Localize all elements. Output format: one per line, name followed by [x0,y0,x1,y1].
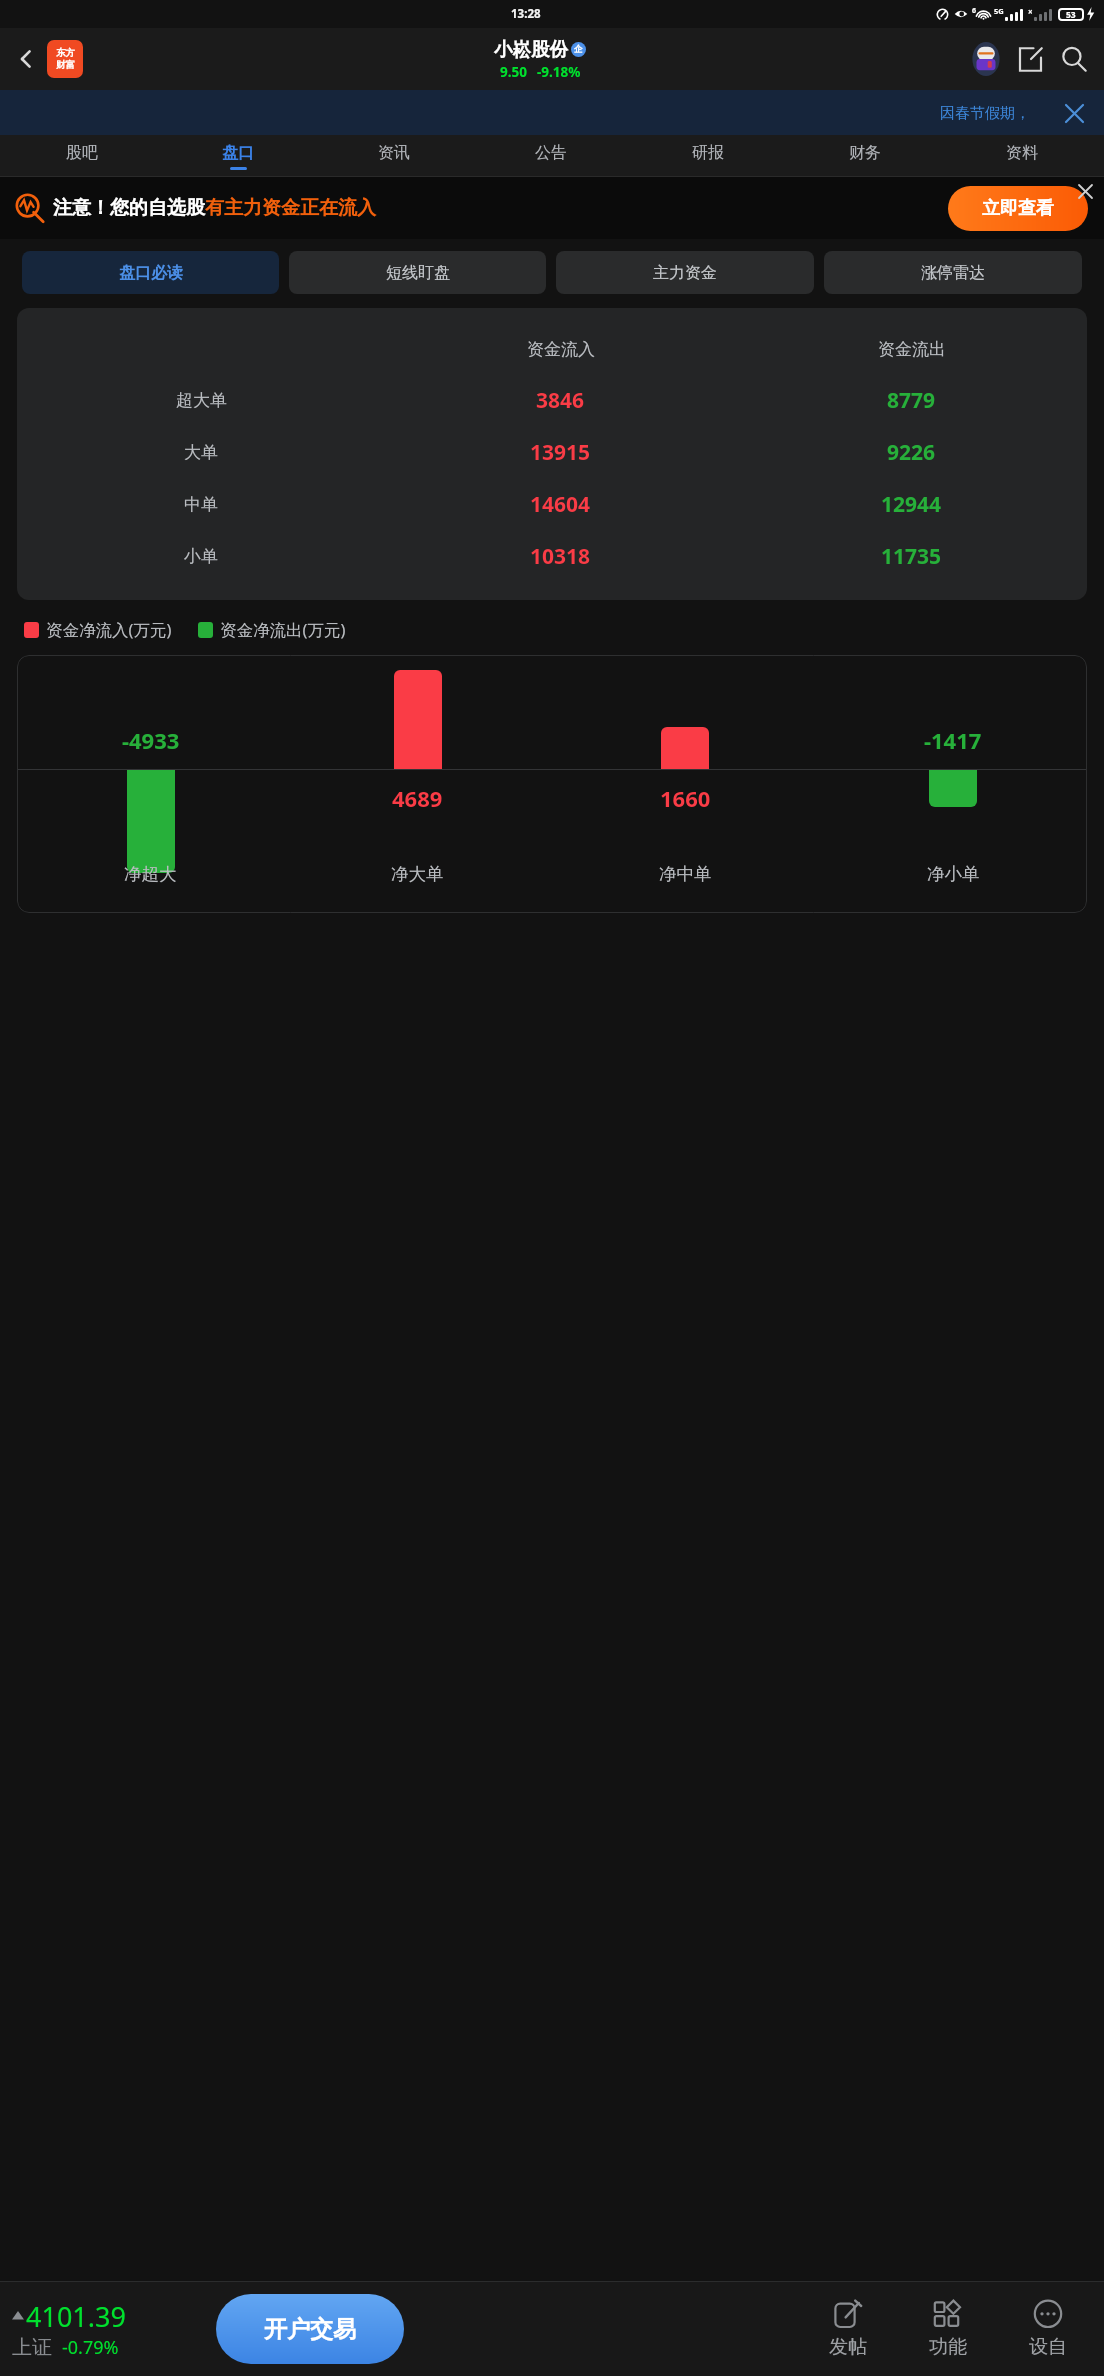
button[interactable]: 4101.39 [12,2298,212,2360]
staticText: 净超大 [124,863,177,885]
staticText: 企 [574,44,583,55]
staticText: 立即查看 [982,197,1054,220]
staticText: 1660 [660,783,711,813]
button[interactable]: 功能 [898,2282,998,2376]
staticText: 盘口 [222,143,254,163]
staticText: 小单 [184,546,218,567]
staticText: 短线盯盘 [386,263,450,283]
staticText: 12944 [881,490,942,519]
button[interactable]: Close [1060,99,1088,127]
staticText: -1417 [924,725,982,755]
button[interactable]: Assistant [964,37,1008,81]
staticText: 9226 [887,438,936,467]
staticText: 大单 [184,442,218,463]
button[interactable]: 立即查看 [948,186,1088,231]
button[interactable]: 设自 [998,2282,1098,2376]
staticText: 盘口必读 [119,263,183,283]
staticText: 资金流入 [527,339,595,360]
staticText: 主力资金 [653,263,717,283]
button[interactable]: 研报 [629,135,786,177]
button[interactable]: 开户交易 [216,2294,404,2364]
staticText: 10318 [530,542,591,571]
staticText: 资金流出 [878,339,946,360]
staticText: 3846 [536,386,585,415]
staticText: -0.79% [62,2335,119,2360]
staticText: 11735 [881,542,942,571]
staticText: 4689 [392,783,443,813]
staticText: 公告 [535,143,567,163]
button[interactable]: -4933 [17,655,1087,913]
button[interactable]: Search [1052,37,1096,81]
staticText: -9.18% [537,63,581,81]
staticText: 上证 [12,2335,52,2360]
button[interactable]: 公告 [472,135,629,177]
staticText: 资料 [1006,143,1038,163]
staticText: 14604 [530,490,591,519]
staticText: 功能 [929,2335,967,2359]
staticText: 中单 [184,494,218,515]
staticText: 13915 [530,438,591,467]
staticText: 53 [1066,9,1076,21]
staticText: 东方 [56,47,75,59]
button[interactable]: 股吧 [4,135,160,177]
staticText: 开户交易 [264,2315,356,2344]
staticText: 6 [972,6,977,16]
button[interactable]: 东方财富 [47,40,83,78]
button[interactable]: 财务 [786,135,943,177]
staticText: 净中单 [659,863,712,885]
staticText: 小崧股份 [494,38,568,61]
button[interactable]: Dismiss ad [1073,179,1097,203]
staticText: 13:28 [511,6,541,22]
button[interactable]: 短线盯盘 [289,251,546,294]
button[interactable]: Share [1008,37,1052,81]
staticText: 资金净流出(万元) [220,618,346,641]
staticText: 资金净流入(万元) [46,618,172,641]
button[interactable]: 资料 [943,135,1100,177]
staticText: 有主力资金正在流入 [205,196,376,220]
button[interactable]: Back [6,39,46,79]
staticText: 研报 [692,143,724,163]
staticText: 8779 [887,386,936,415]
button[interactable]: 小崧股份 [494,38,586,81]
staticText: 4101.39 [26,2298,126,2335]
button[interactable]: 盘口 [160,135,316,177]
staticText: × [1028,6,1033,17]
button[interactable]: 涨停雷达 [824,251,1082,294]
button[interactable]: 发帖 [798,2282,898,2376]
staticText: -4933 [122,725,180,755]
staticText: 资讯 [378,143,410,163]
staticText: 净小单 [927,863,980,885]
button[interactable]: 资讯 [316,135,472,177]
staticText: 超大单 [176,390,227,411]
staticText: 设自 [1029,2335,1067,2359]
button[interactable]: 因春节假期， [0,90,1104,135]
staticText: 财务 [849,143,881,163]
button[interactable]: 注意！您的自选股 [0,177,1104,239]
staticText: 因春节假期， [940,104,1030,123]
staticText: 9.50 [500,63,527,81]
staticText: 5G [994,6,1004,16]
staticText: 股吧 [66,143,98,163]
staticText: 财富 [56,59,75,71]
staticText: 发帖 [829,2335,867,2359]
staticText: 注意！您的自选股 [53,196,205,220]
staticText: 涨停雷达 [921,263,985,283]
staticText: 净大单 [391,863,444,885]
button[interactable]: 主力资金 [556,251,814,294]
button[interactable]: 资金流入 [17,308,1087,600]
button[interactable]: 盘口必读 [22,251,279,294]
